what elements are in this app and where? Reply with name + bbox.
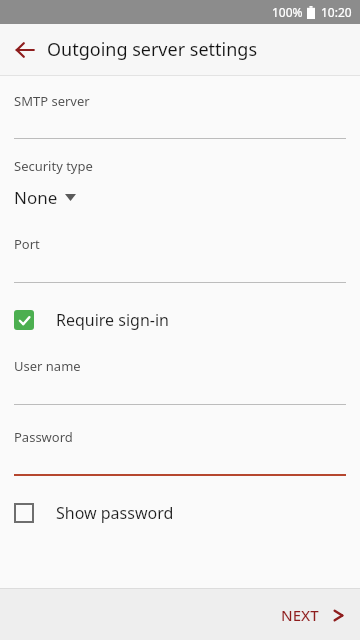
button[interactable]: Show password bbox=[0, 495, 360, 531]
staticText: 100% bbox=[272, 4, 303, 20]
staticText: 10:20 bbox=[321, 4, 352, 20]
staticText: User name bbox=[14, 357, 81, 375]
staticText: SMTP server bbox=[14, 92, 90, 110]
button[interactable]: None bbox=[14, 186, 76, 209]
staticText: Security type bbox=[14, 157, 93, 175]
staticText: Password bbox=[14, 428, 73, 446]
button[interactable]: Back bbox=[6, 31, 44, 69]
button[interactable]: NEXT bbox=[265, 593, 360, 637]
staticText: Require sign-in bbox=[56, 309, 169, 331]
staticText: None bbox=[14, 186, 58, 209]
staticText: Show password bbox=[56, 502, 174, 524]
staticText: Port bbox=[14, 235, 40, 253]
button[interactable]: Require sign-in bbox=[0, 302, 360, 338]
staticText: Outgoing server settings bbox=[47, 37, 258, 62]
staticText: NEXT bbox=[281, 605, 319, 625]
